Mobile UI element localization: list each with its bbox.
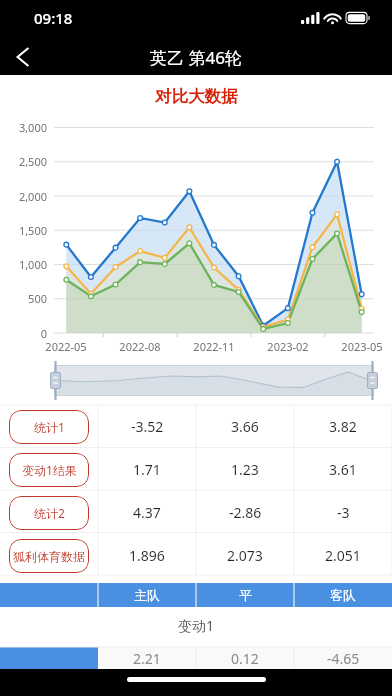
button[interactable]: 客队 xyxy=(294,583,392,607)
staticText: 对比大数据 xyxy=(155,86,238,107)
staticText: 2023-02 xyxy=(253,339,323,354)
button[interactable]: 变动1结果 xyxy=(9,453,89,487)
staticText: -2.86 xyxy=(229,503,262,522)
staticText: 2022-11 xyxy=(179,339,249,354)
staticText: 0.12 xyxy=(231,649,259,668)
staticText: 统计2 xyxy=(34,505,65,521)
staticText: -3 xyxy=(337,503,350,522)
staticText: 0 xyxy=(0,326,47,341)
button[interactable]: 统计1 xyxy=(9,410,89,444)
staticText: 英乙 第46轮 xyxy=(150,46,242,69)
staticText: 3.61 xyxy=(329,460,357,479)
button[interactable]: 平 xyxy=(196,583,294,607)
staticText: 2.21 xyxy=(133,649,161,668)
staticText: -3.52 xyxy=(131,417,164,436)
staticText: 变动1 xyxy=(178,616,215,635)
staticText: 狐利体育数据 xyxy=(13,549,85,564)
button[interactable]: Back xyxy=(0,38,46,75)
staticText: 09:18 xyxy=(34,8,73,28)
staticText: 4.37 xyxy=(133,503,161,522)
button[interactable]: 主队 xyxy=(98,583,196,607)
staticText: 1.71 xyxy=(133,460,161,479)
staticText: 客队 xyxy=(330,587,356,603)
staticText: 3.66 xyxy=(231,417,259,436)
staticText: 变动1结果 xyxy=(22,462,77,478)
staticText: -4.65 xyxy=(327,649,360,668)
staticText: 1.23 xyxy=(231,460,259,479)
staticText: 2,500 xyxy=(0,154,47,169)
staticText: 2.073 xyxy=(227,546,263,565)
button[interactable]: 狐利体育数据 xyxy=(9,539,89,573)
staticText: 3.82 xyxy=(329,417,357,436)
staticText: 2023-05 xyxy=(327,339,392,354)
staticText: 1,000 xyxy=(0,257,47,272)
staticText: 主队 xyxy=(134,587,160,603)
staticText: 平 xyxy=(239,587,252,603)
staticText: 2,000 xyxy=(0,189,47,204)
staticText: 统计1 xyxy=(34,419,65,435)
staticText: 3,000 xyxy=(0,120,47,135)
staticText: 2022-05 xyxy=(31,339,101,354)
staticText: 500 xyxy=(0,291,47,306)
staticText: 1.896 xyxy=(129,546,165,565)
staticText: 2.051 xyxy=(325,546,361,565)
staticText: 2022-08 xyxy=(105,339,175,354)
button[interactable]: 统计2 xyxy=(9,496,89,530)
staticText: 1,500 xyxy=(0,223,47,238)
